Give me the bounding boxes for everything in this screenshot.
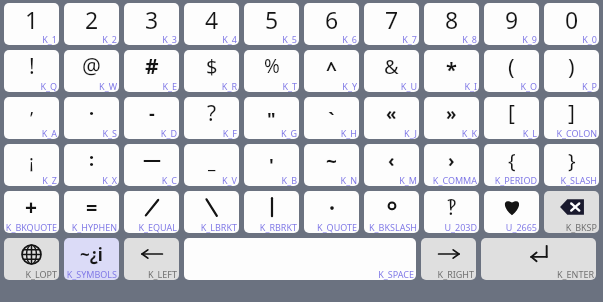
button[interactable]: ?: [184, 97, 239, 139]
staticText: -: [149, 101, 155, 126]
button[interactable]: Language options: [4, 238, 59, 280]
staticText: K_J: [404, 127, 417, 139]
staticText: K_C: [161, 174, 177, 186]
button[interactable]: K_BKSLASH: [364, 191, 419, 233]
staticText: `: [328, 107, 335, 132]
staticText: @: [82, 52, 101, 81]
button[interactable]: ": [244, 97, 299, 139]
staticText: ›: [448, 148, 455, 173]
button[interactable]: ': [244, 144, 299, 186]
button[interactable]: Right: [421, 238, 476, 280]
staticText: =: [86, 194, 98, 221]
staticText: K_EQUAL: [138, 221, 177, 233]
button[interactable]: 0: [544, 3, 599, 45]
staticText: K_A: [41, 127, 57, 139]
button[interactable]: 8: [424, 3, 479, 45]
staticText: K_7: [402, 33, 417, 45]
button[interactable]: [: [484, 97, 539, 139]
button[interactable]: —: [124, 144, 179, 186]
button[interactable]: ›: [424, 144, 479, 186]
staticText: «: [386, 102, 397, 125]
staticText: K_T: [282, 80, 297, 92]
button[interactable]: =: [64, 191, 119, 233]
button[interactable]: Left: [124, 238, 179, 280]
staticText: 8: [445, 4, 459, 35]
button[interactable]: ’: [4, 97, 59, 139]
button[interactable]: K_LBRKT: [184, 191, 239, 233]
button[interactable]: 6: [304, 3, 359, 45]
button[interactable]: 3: [124, 3, 179, 45]
staticText: K_R: [221, 80, 237, 92]
staticText: K_2: [102, 33, 117, 45]
staticText: K_Y: [342, 80, 357, 92]
button[interactable]: ¡: [4, 144, 59, 186]
button[interactable]: »: [424, 97, 479, 139]
button[interactable]: $: [184, 50, 239, 92]
staticText: K_QUOTE: [317, 221, 357, 233]
staticText: $: [206, 53, 218, 80]
button[interactable]: K_EQUAL: [124, 191, 179, 233]
staticText: ‹: [388, 148, 395, 173]
button[interactable]: -: [124, 97, 179, 139]
button[interactable]: &: [364, 50, 419, 92]
button[interactable]: Backspace: [544, 191, 599, 233]
staticText: K_S: [102, 127, 117, 139]
staticText: K_SYMBOLS: [66, 268, 117, 280]
staticText: {: [508, 147, 516, 174]
staticText: 9: [505, 4, 519, 35]
button[interactable]: 9: [484, 3, 539, 45]
button[interactable]: ‽: [424, 191, 479, 233]
button[interactable]: _: [184, 144, 239, 186]
button[interactable]: 1: [4, 3, 59, 45]
button[interactable]: (: [484, 50, 539, 92]
button[interactable]: ]: [544, 97, 599, 139]
button[interactable]: #: [124, 50, 179, 92]
button[interactable]: {: [484, 144, 539, 186]
staticText: 7: [385, 4, 399, 35]
button[interactable]: ^: [304, 50, 359, 92]
button[interactable]: `: [304, 97, 359, 139]
button[interactable]: !: [4, 50, 59, 92]
staticText: U_2665: [505, 221, 537, 233]
button[interactable]: ): [544, 50, 599, 92]
button[interactable]: ~: [304, 144, 359, 186]
button[interactable]: @: [64, 50, 119, 92]
button[interactable]: «: [364, 97, 419, 139]
button[interactable]: *: [424, 50, 479, 92]
button[interactable]: ‹: [364, 144, 419, 186]
button[interactable]: K_SPACE: [184, 238, 416, 280]
staticText: K_HYPHEN: [71, 221, 117, 233]
staticText: ~¿i: [80, 243, 103, 266]
staticText: K_BKSLASH: [368, 221, 417, 233]
button[interactable]: 2: [64, 3, 119, 45]
button[interactable]: +: [4, 191, 59, 233]
button[interactable]: }: [544, 144, 599, 186]
staticText: 0: [565, 4, 579, 35]
button[interactable]: :: [64, 144, 119, 186]
button[interactable]: ~¿i: [64, 238, 119, 280]
staticText: K_W: [99, 80, 117, 92]
button[interactable]: %: [244, 50, 299, 92]
button[interactable]: K_QUOTE: [304, 191, 359, 233]
staticText: U_203D: [444, 221, 477, 233]
staticText: K_BKQUOTE: [5, 221, 57, 233]
staticText: ’: [30, 106, 34, 131]
staticText: 4: [205, 4, 219, 35]
staticText: K_LOPT: [25, 268, 57, 280]
staticText: K_0: [582, 33, 597, 45]
staticText: K_6: [342, 33, 357, 45]
button[interactable]: U_2665: [484, 191, 539, 233]
button[interactable]: 5: [244, 3, 299, 45]
staticText: K_COLON: [556, 127, 597, 139]
staticText: K_H: [340, 127, 357, 139]
button[interactable]: 7: [364, 3, 419, 45]
staticText: K_F: [222, 127, 237, 139]
staticText: #: [145, 52, 159, 81]
staticText: K_SPACE: [378, 268, 414, 280]
button[interactable]: K_RBRKT: [244, 191, 299, 233]
staticText: K_B: [281, 174, 297, 186]
button[interactable]: 4: [184, 3, 239, 45]
staticText: [: [508, 99, 515, 128]
button[interactable]: ·: [64, 97, 119, 139]
button[interactable]: Enter: [481, 238, 596, 280]
